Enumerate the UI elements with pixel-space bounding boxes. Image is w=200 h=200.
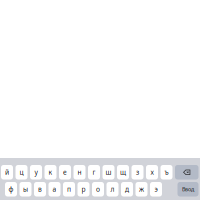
- staticText: у: [34, 168, 37, 177]
- button[interactable]: Ввод: [177, 182, 198, 196]
- staticText: г: [92, 168, 95, 177]
- button[interactable]: Delete: [175, 165, 198, 179]
- staticText: л: [110, 185, 114, 194]
- button[interactable]: е: [59, 165, 71, 179]
- staticText: р: [81, 185, 85, 194]
- staticText: ы: [23, 185, 28, 194]
- staticText: н: [77, 168, 81, 177]
- staticText: ъ: [164, 168, 168, 177]
- button[interactable]: н: [73, 165, 85, 179]
- staticText: щ: [120, 168, 126, 177]
- staticText: в: [38, 185, 42, 194]
- button[interactable]: ы: [19, 182, 31, 196]
- button[interactable]: п: [63, 182, 75, 196]
- staticText: ш: [105, 168, 111, 177]
- button[interactable]: о: [92, 182, 104, 196]
- button[interactable]: й: [1, 165, 13, 179]
- button[interactable]: г: [88, 165, 100, 179]
- button[interactable]: ц: [15, 165, 27, 179]
- staticText: Ввод: [182, 186, 194, 193]
- button[interactable]: з: [131, 165, 143, 179]
- staticText: е: [63, 168, 67, 177]
- button[interactable]: ъ: [160, 165, 172, 179]
- button[interactable]: р: [77, 182, 89, 196]
- staticText: ф: [8, 185, 13, 194]
- staticText: к: [48, 168, 52, 177]
- button[interactable]: х: [146, 165, 158, 179]
- button[interactable]: в: [34, 182, 46, 196]
- button[interactable]: ф: [5, 182, 17, 196]
- button[interactable]: у: [30, 165, 42, 179]
- staticText: ц: [19, 168, 23, 177]
- staticText: х: [150, 168, 153, 177]
- button[interactable]: а: [48, 182, 60, 196]
- button[interactable]: ш: [102, 165, 114, 179]
- staticText: о: [96, 185, 100, 194]
- staticText: з: [136, 168, 139, 177]
- staticText: а: [52, 185, 56, 194]
- button[interactable]: к: [44, 165, 56, 179]
- button[interactable]: л: [106, 182, 118, 196]
- staticText: й: [5, 168, 9, 177]
- button[interactable]: д: [121, 182, 133, 196]
- button[interactable]: ж: [135, 182, 147, 196]
- staticText: ж: [139, 185, 144, 194]
- staticText: э: [154, 185, 157, 194]
- button[interactable]: э: [150, 182, 162, 196]
- button[interactable]: щ: [117, 165, 129, 179]
- staticText: д: [125, 185, 129, 194]
- staticText: п: [67, 185, 71, 194]
